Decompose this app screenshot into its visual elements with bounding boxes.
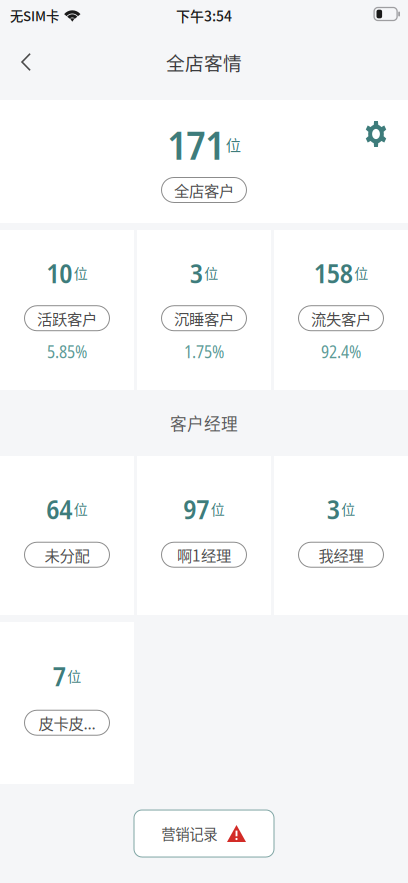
button[interactable]: 活跃客户 <box>24 306 109 331</box>
staticText: 营销记录 <box>161 823 217 844</box>
staticText: 10 <box>46 254 72 291</box>
button[interactable]: 158 <box>274 230 408 390</box>
button[interactable]: 3 <box>274 456 408 615</box>
staticText: 位 <box>354 262 368 283</box>
staticText: 流失客户 <box>311 307 371 329</box>
staticText: 活跃客户 <box>37 307 97 329</box>
button[interactable]: 97 <box>137 456 271 615</box>
staticText: 位 <box>74 498 88 519</box>
staticText: 7 <box>53 657 66 694</box>
staticText: 64 <box>46 490 72 527</box>
button[interactable]: 返回 <box>0 38 52 86</box>
button[interactable]: 3 <box>137 230 271 390</box>
staticText: 啊1经理 <box>177 544 231 566</box>
button[interactable]: 7 <box>0 622 134 784</box>
button[interactable]: 10 <box>0 230 134 390</box>
button[interactable]: 营销记录 <box>134 810 274 857</box>
staticText: 全店客户 <box>174 179 234 201</box>
button[interactable]: 沉睡客户 <box>161 306 246 331</box>
button[interactable]: 流失客户 <box>298 306 383 331</box>
staticText: 沉睡客户 <box>174 307 234 329</box>
staticText: 位 <box>341 498 355 519</box>
staticText: 客户经理 <box>170 411 238 435</box>
staticText: 皮卡皮... <box>38 712 95 734</box>
staticText: 5.85% <box>47 340 87 363</box>
staticText: 位 <box>67 665 81 686</box>
staticText: 3 <box>327 490 340 527</box>
staticText: 我经理 <box>318 544 363 566</box>
staticText: 位 <box>226 133 241 155</box>
staticText: 全店客情 <box>166 48 242 75</box>
button[interactable]: 皮卡皮... <box>24 710 109 735</box>
staticText: 158 <box>314 254 353 291</box>
button[interactable]: 我经理 <box>298 542 383 567</box>
staticText: 3 <box>190 254 203 291</box>
staticText: 97 <box>183 490 209 527</box>
button[interactable]: 设置 <box>355 110 397 157</box>
button[interactable]: 64 <box>0 456 134 615</box>
staticText: 1.75% <box>184 340 224 363</box>
staticText: 未分配 <box>44 544 89 566</box>
button[interactable]: 未分配 <box>24 542 109 567</box>
button[interactable]: 啊1经理 <box>161 542 246 567</box>
staticText: 92.4% <box>321 340 361 363</box>
staticText: 下午3:54 <box>176 5 232 26</box>
staticText: 位 <box>204 262 218 283</box>
staticText: 171 <box>167 117 224 171</box>
button[interactable]: 全店客户 <box>161 177 246 202</box>
staticText: 位 <box>74 262 88 283</box>
staticText: 位 <box>211 498 225 519</box>
staticText: 无SIM卡 <box>10 6 59 25</box>
